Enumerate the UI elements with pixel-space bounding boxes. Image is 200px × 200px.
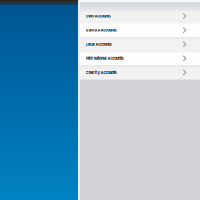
staticText: Samba Accounts <box>86 28 117 32</box>
button[interactable]: Charity Accounts <box>80 65 200 79</box>
button[interactable]: Local Accounts <box>80 37 200 51</box>
button[interactable]: Samba Accounts <box>80 23 200 37</box>
staticText: International Accounts <box>86 56 124 61</box>
staticText: Charity Accounts <box>86 70 117 75</box>
staticText: Own Accounts <box>86 14 111 18</box>
staticText: Local Accounts <box>86 42 112 47</box>
button[interactable]: Own Accounts <box>80 9 200 23</box>
button[interactable]: International Accounts <box>80 51 200 65</box>
